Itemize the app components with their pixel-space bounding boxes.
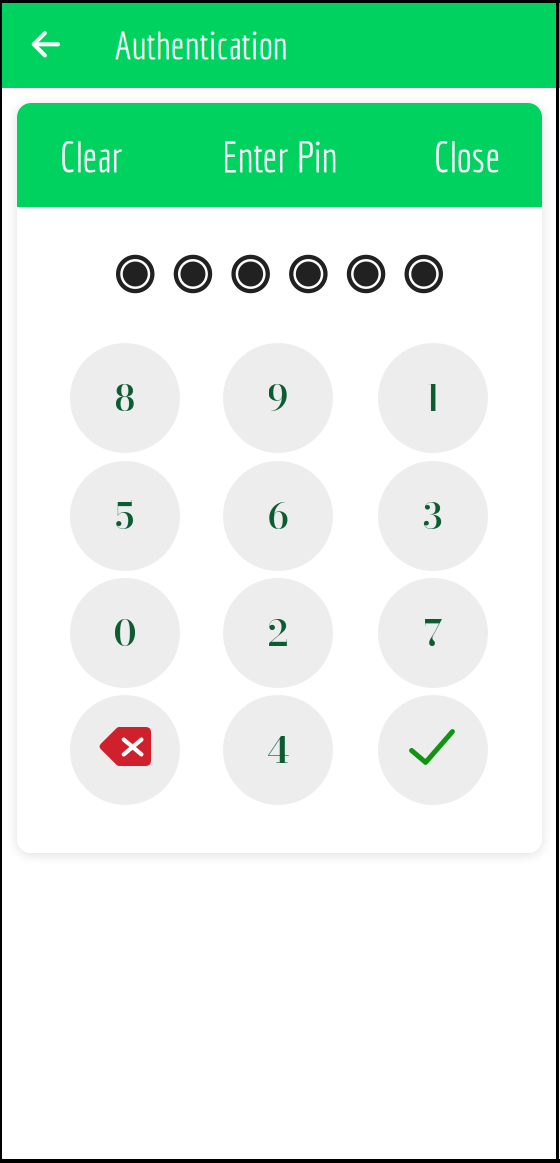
staticText: 8 bbox=[114, 370, 135, 425]
button[interactable]: 0 bbox=[70, 578, 180, 688]
button[interactable]: 1 bbox=[378, 343, 488, 453]
button[interactable]: Confirm bbox=[378, 695, 488, 805]
button[interactable]: 5 bbox=[70, 461, 180, 571]
button[interactable]: Close bbox=[419, 121, 514, 193]
staticText: 1 bbox=[424, 370, 441, 425]
button[interactable]: 2 bbox=[223, 578, 333, 688]
staticText: 6 bbox=[267, 488, 288, 543]
staticText: 0 bbox=[113, 605, 136, 660]
staticText: 7 bbox=[423, 605, 442, 660]
staticText: 4 bbox=[266, 722, 289, 777]
button[interactable]: 7 bbox=[378, 578, 488, 688]
staticText: 3 bbox=[423, 488, 443, 543]
staticText: Clear bbox=[59, 133, 122, 181]
button[interactable]: 4 bbox=[223, 695, 333, 805]
button[interactable]: Back bbox=[16, 15, 76, 75]
button[interactable]: 8 bbox=[70, 343, 180, 453]
button[interactable]: 6 bbox=[223, 461, 333, 571]
button[interactable]: Delete bbox=[70, 695, 180, 805]
button[interactable]: 9 bbox=[223, 343, 333, 453]
staticText: 9 bbox=[267, 370, 288, 425]
button[interactable]: Clear bbox=[45, 121, 136, 193]
button[interactable]: 3 bbox=[378, 461, 488, 571]
staticText: 5 bbox=[115, 488, 134, 543]
staticText: Authentication bbox=[114, 23, 287, 67]
staticText: 2 bbox=[267, 605, 288, 660]
staticText: Enter Pin bbox=[221, 133, 337, 181]
staticText: Close bbox=[433, 133, 500, 181]
